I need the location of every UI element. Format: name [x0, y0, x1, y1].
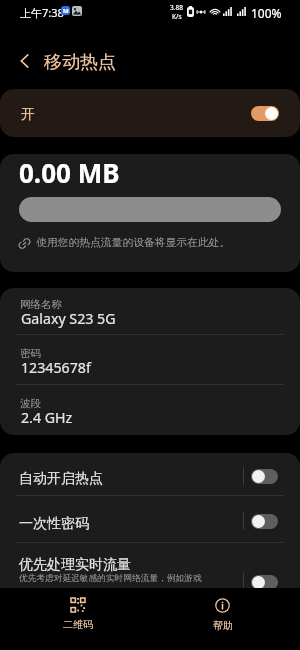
staticText: 二维码 [63, 618, 93, 631]
button[interactable]: Toggle [251, 514, 278, 529]
staticText: 3.88 [170, 3, 183, 12]
staticText: 一次性密码 [19, 515, 89, 533]
staticText: 优先处理实时流量 [19, 556, 131, 574]
staticText: 12345678f [21, 358, 91, 377]
button[interactable]: 帮助 [195, 588, 250, 650]
staticText: 帮助 [213, 619, 233, 632]
button[interactable]: 一次性密码 [0, 496, 300, 543]
staticText: 网络名称 [20, 298, 62, 311]
staticText: 移动热点 [44, 51, 116, 74]
staticText: M [63, 7, 69, 15]
button[interactable]: 波段 [0, 385, 300, 435]
staticText: 密码 [20, 347, 41, 360]
staticText: 开 [21, 106, 35, 124]
button[interactable]: Hotspot on [251, 106, 279, 121]
staticText: Galaxy S23 5G [21, 309, 116, 328]
staticText: 2.4 GHz [21, 408, 73, 427]
button[interactable]: 开 [0, 89, 300, 137]
button[interactable]: 二维码 [48, 588, 108, 650]
button[interactable]: 密码 [0, 335, 300, 385]
staticText: 优先考虑对延迟敏感的实时网络流量，例如游戏 [19, 573, 202, 584]
staticText: 使用您的热点流量的设备将显示在此处。 [36, 236, 231, 250]
button[interactable]: 网络名称 [0, 288, 300, 335]
staticText: 100% [251, 5, 282, 21]
button[interactable]: Back [13, 49, 36, 72]
staticText: K/s [172, 12, 182, 21]
staticText: 0.00 MB [19, 155, 120, 190]
staticText: 波段 [20, 397, 41, 410]
staticText: 自动开启热点 [19, 470, 103, 488]
button[interactable]: 自动开启热点 [0, 453, 300, 496]
button[interactable]: Toggle [251, 469, 278, 484]
button[interactable]: Toggle [251, 575, 278, 590]
button[interactable]: 优先处理实时流量 [0, 543, 300, 619]
staticText: 上午7:38 [20, 5, 64, 20]
